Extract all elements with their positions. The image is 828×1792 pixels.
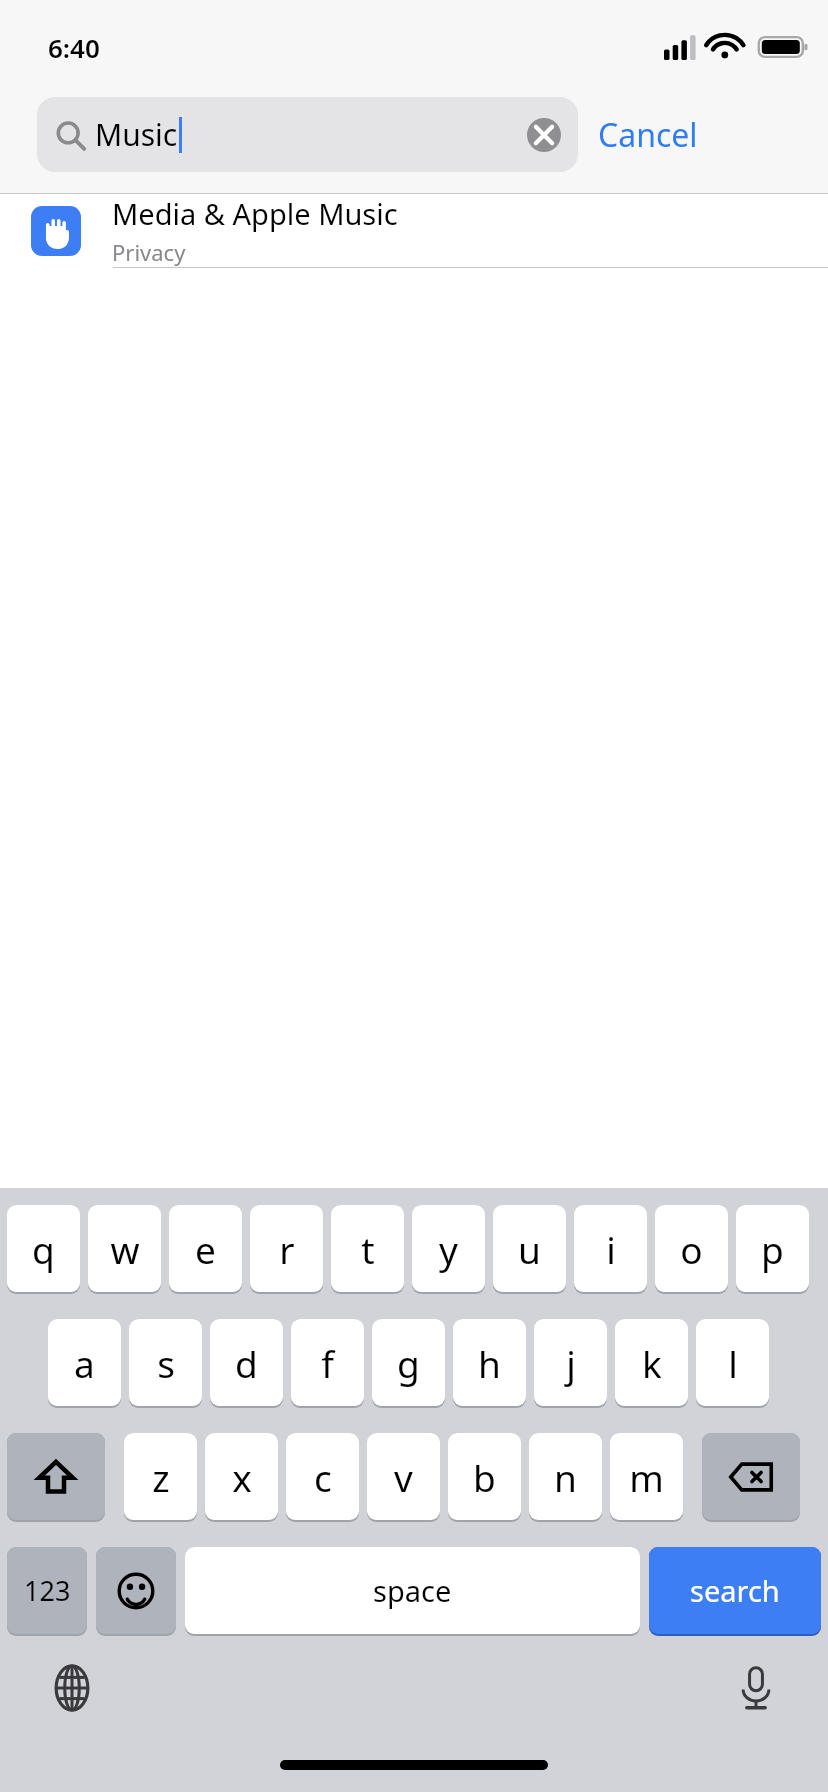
button[interactable]: l	[696, 1319, 769, 1411]
staticText: e	[195, 1224, 216, 1274]
button[interactable]: Shift	[7, 1433, 105, 1525]
staticText: j	[566, 1338, 576, 1388]
button[interactable]: o	[655, 1205, 728, 1297]
staticText: k	[642, 1338, 662, 1388]
button[interactable]: d	[210, 1319, 283, 1411]
button[interactable]: i	[574, 1205, 647, 1297]
button[interactable]: search	[649, 1547, 821, 1639]
button[interactable]: v	[367, 1433, 440, 1525]
button[interactable]: Numbers	[7, 1547, 87, 1639]
button[interactable]: f	[291, 1319, 364, 1411]
button[interactable]: r	[250, 1205, 323, 1297]
staticText: Privacy	[112, 237, 186, 267]
staticText: Music	[95, 114, 178, 155]
staticText: search	[690, 1571, 780, 1610]
button[interactable]: e	[169, 1205, 242, 1297]
staticText: m	[629, 1452, 664, 1502]
button[interactable]: Media & Apple Music	[0, 194, 828, 268]
staticText: x	[232, 1452, 252, 1502]
button[interactable]: t	[331, 1205, 404, 1297]
button[interactable]: n	[529, 1433, 602, 1525]
button[interactable]: m	[610, 1433, 683, 1525]
staticText: 123	[24, 1572, 71, 1609]
button[interactable]: a	[48, 1319, 121, 1411]
button[interactable]: z	[124, 1433, 197, 1525]
button[interactable]: h	[453, 1319, 526, 1411]
button[interactable]: Change keyboard	[45, 1661, 99, 1715]
staticText: 6:40	[48, 30, 100, 65]
staticText: o	[680, 1224, 703, 1274]
staticText: b	[473, 1452, 496, 1502]
button[interactable]: k	[615, 1319, 688, 1411]
staticText: z	[152, 1452, 170, 1502]
button[interactable]: q	[7, 1205, 80, 1297]
button[interactable]: u	[493, 1205, 566, 1297]
staticText: f	[321, 1338, 334, 1388]
button[interactable]: y	[412, 1205, 485, 1297]
button[interactable]: j	[534, 1319, 607, 1411]
button[interactable]: w	[88, 1205, 161, 1297]
staticText: s	[157, 1338, 175, 1388]
button[interactable]: Clear text	[527, 118, 561, 152]
staticText: Media & Apple Music	[112, 194, 398, 233]
button[interactable]: Emoji	[96, 1547, 176, 1639]
button[interactable]: b	[448, 1433, 521, 1525]
staticText: Cancel	[598, 113, 698, 157]
button[interactable]: x	[205, 1433, 278, 1525]
staticText: u	[518, 1224, 541, 1274]
staticText: n	[554, 1452, 577, 1502]
button[interactable]: c	[286, 1433, 359, 1525]
button[interactable]: s	[129, 1319, 202, 1411]
button[interactable]: p	[736, 1205, 809, 1297]
staticText: l	[728, 1338, 738, 1388]
staticText: a	[74, 1338, 95, 1388]
staticText: h	[478, 1338, 501, 1388]
staticText: p	[761, 1224, 784, 1274]
staticText: t	[361, 1224, 375, 1274]
button[interactable]: Cancel	[598, 113, 698, 157]
staticText: q	[32, 1224, 55, 1274]
button[interactable]: space	[185, 1547, 640, 1639]
staticText: space	[373, 1571, 452, 1610]
button[interactable]: Music	[37, 97, 578, 172]
staticText: r	[279, 1224, 295, 1274]
staticText: i	[606, 1224, 616, 1274]
staticText: d	[235, 1338, 258, 1388]
button[interactable]: Backspace	[702, 1433, 800, 1525]
staticText: v	[394, 1452, 413, 1502]
button[interactable]: g	[372, 1319, 445, 1411]
button[interactable]: Dictation	[729, 1661, 783, 1715]
staticText: g	[397, 1338, 420, 1388]
staticText: c	[314, 1452, 332, 1502]
staticText: y	[439, 1224, 458, 1274]
staticText: w	[110, 1224, 140, 1274]
